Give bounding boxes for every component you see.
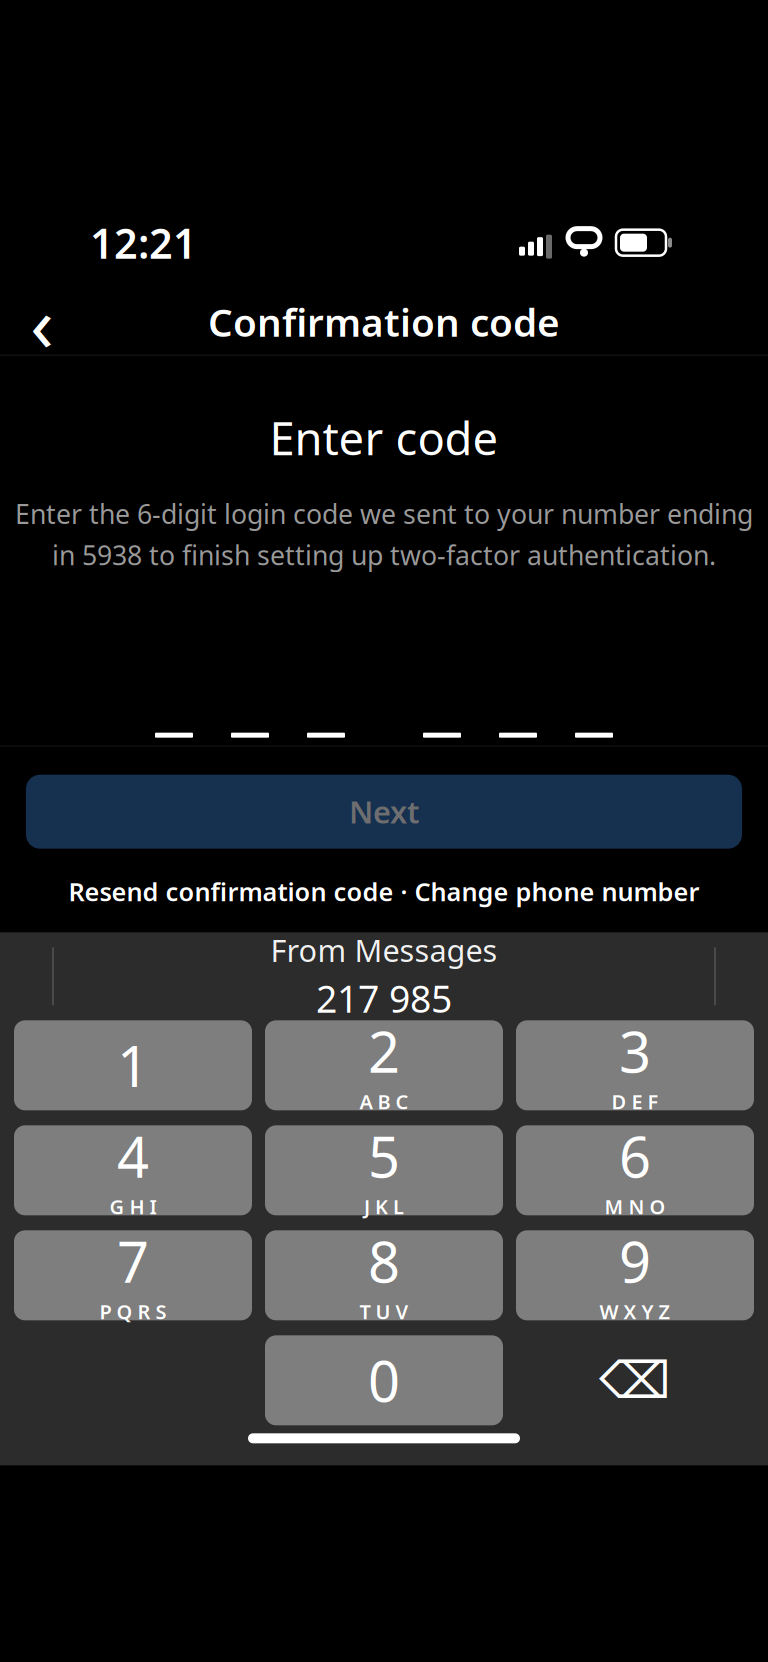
staticText: 4 — [117, 1119, 149, 1193]
staticText: D E F — [611, 1088, 658, 1115]
staticText: 8 — [368, 1224, 400, 1298]
staticText: 9 — [619, 1224, 651, 1298]
button[interactable]: Resend confirmation code · Change phone … — [68, 849, 699, 932]
staticText: G H I — [109, 1193, 156, 1220]
staticText: 5 — [368, 1119, 400, 1193]
button[interactable]: 2 — [265, 1020, 503, 1110]
button[interactable]: Next — [26, 775, 742, 849]
button[interactable]: 6 — [516, 1125, 754, 1215]
button[interactable]: 4 — [14, 1125, 252, 1215]
button[interactable]: 1 — [14, 1020, 252, 1110]
staticText: W X Y Z — [599, 1298, 670, 1325]
staticText: 1 — [117, 1028, 149, 1103]
staticText: 0 — [368, 1343, 400, 1418]
staticText: Next — [349, 791, 419, 832]
staticText: P Q R S — [99, 1298, 166, 1325]
button[interactable]: 3 — [516, 1020, 754, 1110]
staticText: J K L — [364, 1193, 404, 1220]
staticText: 2 — [368, 1014, 400, 1088]
staticText: ⌫ — [599, 1352, 671, 1409]
staticText: 7 — [117, 1224, 149, 1298]
staticText: ‹ — [30, 270, 54, 373]
staticText: Resend confirmation code · Change phone … — [68, 875, 699, 908]
button[interactable]: From Messages — [270, 930, 497, 1023]
button[interactable]: 0 — [265, 1335, 503, 1425]
staticText: 217 985 — [316, 973, 452, 1023]
staticText: Enter code — [269, 408, 498, 468]
staticText: 12:21 — [90, 215, 197, 270]
staticText: 3 — [619, 1014, 651, 1088]
staticText: M N O — [604, 1193, 665, 1220]
staticText: Confirmation code — [208, 296, 560, 347]
button[interactable]: 7 — [14, 1230, 252, 1320]
button[interactable]: Delete — [516, 1335, 754, 1425]
staticText: 6 — [619, 1119, 651, 1193]
staticText: A B C — [359, 1088, 408, 1115]
staticText: T U V — [359, 1298, 408, 1325]
button[interactable]: 8 — [265, 1230, 503, 1320]
button[interactable]: 5 — [265, 1125, 503, 1215]
button[interactable]: Back — [8, 289, 76, 355]
button[interactable]: 9 — [516, 1230, 754, 1320]
staticText: in 5938 to finish setting up two-factor … — [52, 537, 716, 573]
staticText: Enter the 6-digit login code we sent to … — [15, 496, 753, 531]
staticText: From Messages — [270, 930, 497, 970]
